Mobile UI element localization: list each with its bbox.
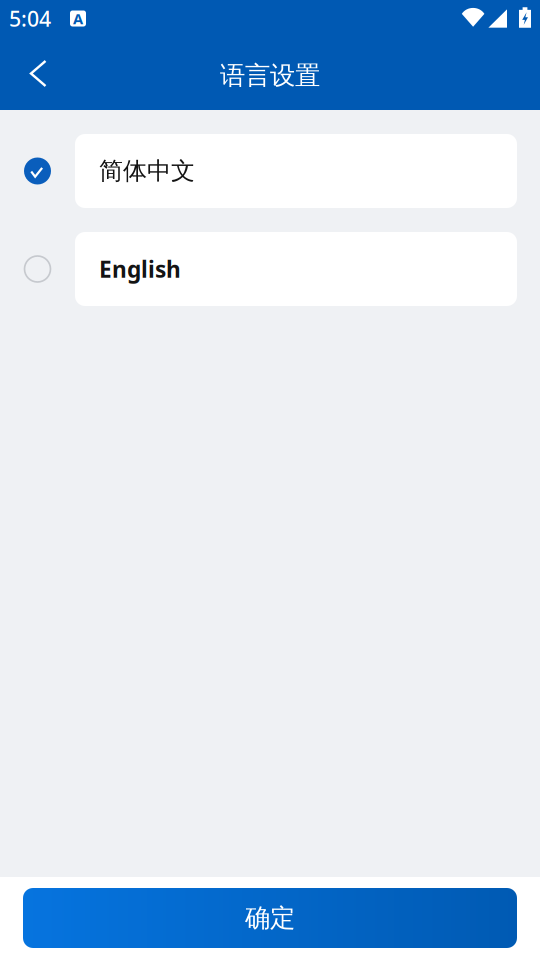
- staticText: 简体中文: [99, 156, 195, 186]
- staticText: 5:04: [9, 4, 51, 33]
- button[interactable]: English: [0, 232, 540, 306]
- button[interactable]: 确定: [0, 877, 540, 960]
- staticText: A: [73, 9, 83, 28]
- staticText: English: [99, 254, 181, 284]
- button[interactable]: 简体中文: [0, 134, 540, 208]
- staticText: 确定: [245, 902, 295, 933]
- button[interactable]: Back: [0, 43, 66, 104]
- staticText: 语言设置: [220, 60, 320, 91]
